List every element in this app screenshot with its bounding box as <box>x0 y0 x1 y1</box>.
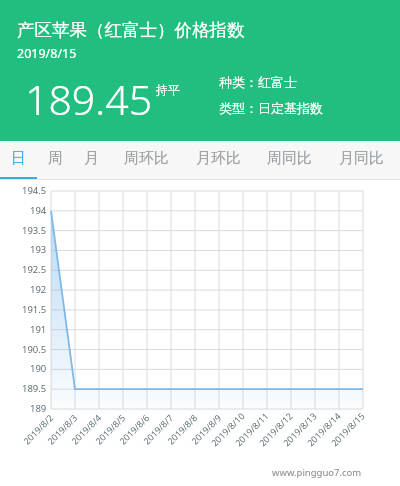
staticText: 193 <box>30 243 47 256</box>
staticText: 种类：红富士 <box>219 74 297 90</box>
staticText: 189 <box>30 402 47 415</box>
staticText: 194.5 <box>22 184 47 197</box>
staticText: 192.5 <box>22 263 47 276</box>
button[interactable]: 日 <box>0 141 36 180</box>
staticText: 2019/8/12 <box>256 410 295 448</box>
staticText: 191 <box>30 323 47 336</box>
staticText: 月同比 <box>339 149 384 168</box>
staticText: 类型：日定基指数 <box>219 100 323 116</box>
button[interactable]: 月 <box>73 141 109 180</box>
staticText: 2019/8/11 <box>232 410 271 448</box>
staticText: 2019/8/2 <box>20 411 56 447</box>
staticText: 2019/8/14 <box>304 410 343 448</box>
staticText: 190 <box>30 362 47 375</box>
staticText: 2019/8/15 <box>17 45 77 62</box>
staticText: 191.5 <box>22 303 47 316</box>
button[interactable]: 周环比 <box>116 141 176 180</box>
staticText: 193.5 <box>22 224 47 237</box>
staticText: www.pingguo7.com <box>272 466 362 479</box>
staticText: 2019/8/4 <box>68 411 104 447</box>
staticText: 189.5 <box>22 382 47 395</box>
staticText: 2019/8/8 <box>164 411 200 447</box>
staticText: 2019/8/6 <box>116 411 152 447</box>
staticText: 月环比 <box>196 149 241 168</box>
staticText: 2019/8/5 <box>92 411 128 447</box>
staticText: 周 <box>48 149 63 168</box>
staticText: 2019/8/10 <box>208 410 247 448</box>
staticText: 月 <box>84 149 99 168</box>
staticText: 产区苹果（红富士）价格指数 <box>17 19 245 41</box>
staticText: 2019/8/7 <box>140 411 176 447</box>
staticText: 189.45 <box>25 71 153 127</box>
staticText: 周环比 <box>124 149 169 168</box>
staticText: 日 <box>11 149 26 168</box>
staticText: 194 <box>30 204 47 217</box>
staticText: 周同比 <box>267 149 312 168</box>
staticText: 2019/8/13 <box>280 410 319 448</box>
staticText: 2019/8/15 <box>328 410 367 448</box>
staticText: 持平 <box>156 82 180 97</box>
staticText: 2019/8/9 <box>188 411 224 447</box>
button[interactable]: 周 <box>37 141 73 180</box>
staticText: 2019/8/3 <box>44 411 80 447</box>
staticText: 192 <box>30 283 47 296</box>
button[interactable]: 周同比 <box>259 141 319 180</box>
button[interactable]: 月环比 <box>188 141 248 180</box>
staticText: 190.5 <box>22 343 47 356</box>
button[interactable]: 月同比 <box>331 141 391 180</box>
